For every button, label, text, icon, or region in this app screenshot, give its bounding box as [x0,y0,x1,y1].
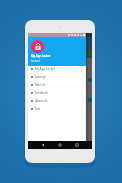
button[interactable]: Recent apps [75,143,79,147]
button[interactable]: Exit [28,105,86,113]
button[interactable]: Home [58,143,62,147]
staticText: My App Locker [31,54,51,58]
button[interactable]: Settings [28,73,86,81]
button[interactable]: Rate Us [28,81,86,89]
button[interactable]: My App Locker [28,37,86,66]
button[interactable]: Feedback [28,89,86,97]
staticText: Exit [35,107,40,111]
staticText: Feedback [35,91,48,95]
staticText: Settings [35,75,46,79]
staticText: About Us [35,99,48,103]
button[interactable]: Back [41,143,45,147]
staticText: My App Locker [35,67,56,71]
button[interactable]: My App Locker [28,65,86,73]
staticText: Locked [31,59,40,63]
staticText: Rate Us [35,83,46,87]
button[interactable]: About Us [28,97,86,105]
